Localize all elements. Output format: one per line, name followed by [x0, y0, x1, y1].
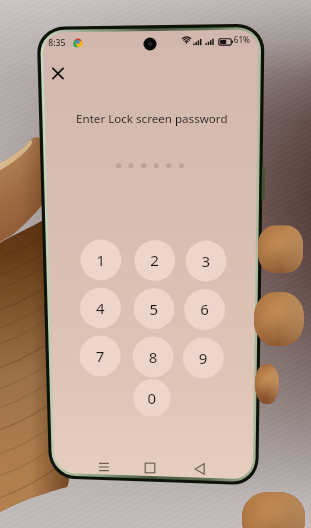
button[interactable] — [0, 0, 311, 528]
